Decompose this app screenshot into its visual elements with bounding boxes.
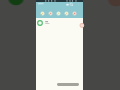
button[interactable]: Search (69, 2, 74, 7)
button[interactable]: Story 5 (72, 11, 77, 16)
button[interactable]: Cart (65, 2, 70, 7)
button[interactable]: Story 1 (40, 11, 45, 16)
button[interactable]: Story 4 (64, 11, 69, 16)
button[interactable]: Story 3 (56, 11, 61, 16)
button[interactable]: More options (76, 2, 81, 7)
button[interactable]: Story 2 (48, 11, 53, 16)
button[interactable]: Free shipping (37, 20, 43, 26)
